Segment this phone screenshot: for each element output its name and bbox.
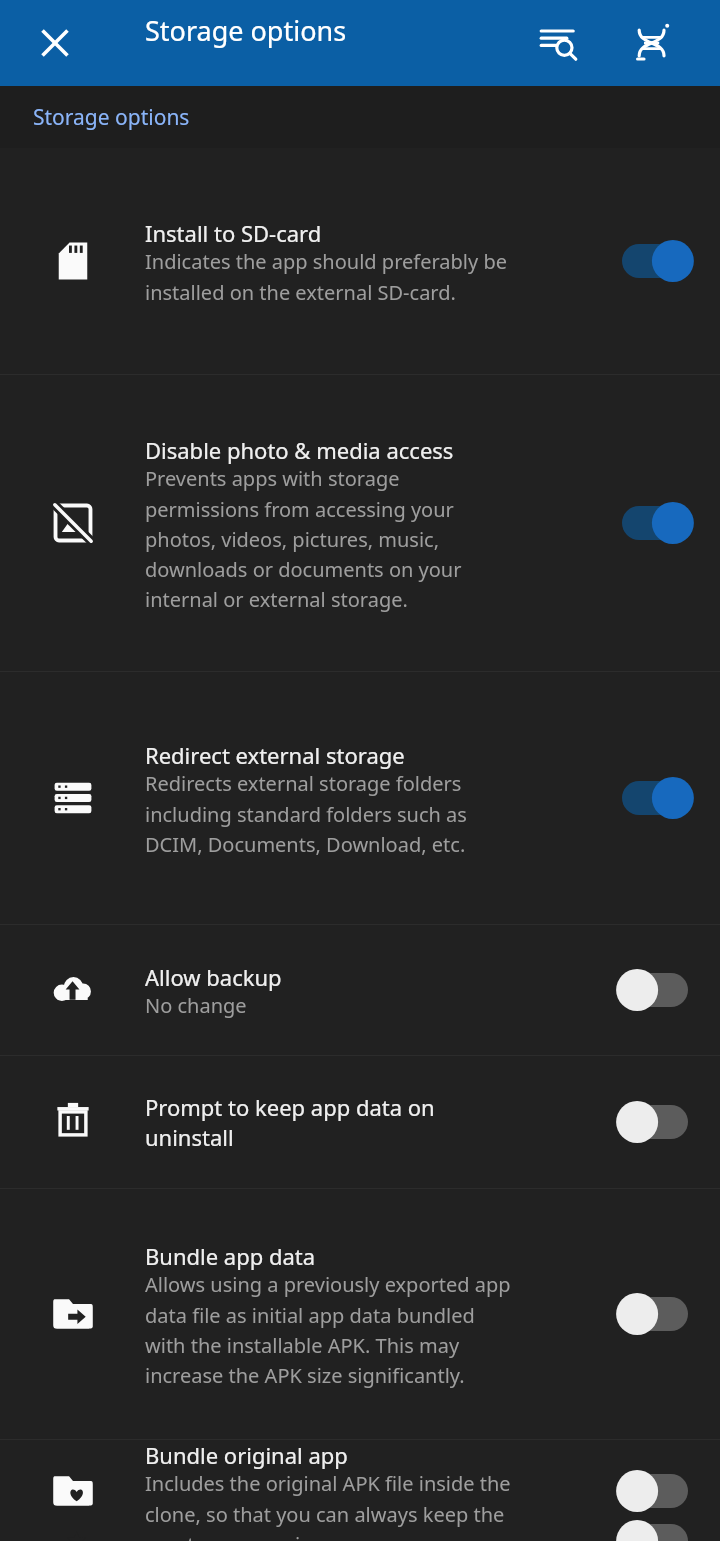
button[interactable] bbox=[609, 770, 701, 826]
staticText: Redirects external storage folders inclu… bbox=[145, 770, 467, 857]
button[interactable]: Mutate bbox=[622, 13, 682, 73]
staticText: Bundle original app bbox=[145, 1440, 348, 1470]
staticText: Bundle app data bbox=[145, 1241, 316, 1271]
button[interactable]: Allow backup bbox=[0, 925, 720, 1055]
button[interactable]: Install to SD-card bbox=[0, 148, 720, 374]
button[interactable] bbox=[609, 962, 701, 1018]
staticText: Prompt to keep app data on uninstall bbox=[145, 1092, 435, 1152]
button[interactable]: Filter and search bbox=[528, 13, 588, 73]
staticText: Includes the original APK file inside th… bbox=[145, 1470, 511, 1541]
button[interactable]: Close bbox=[26, 14, 84, 72]
staticText: No change bbox=[145, 992, 247, 1019]
button[interactable] bbox=[609, 1286, 701, 1342]
button[interactable] bbox=[609, 1094, 701, 1150]
button[interactable] bbox=[609, 233, 701, 289]
button[interactable] bbox=[609, 1463, 701, 1519]
button[interactable]: Disable photo & media access bbox=[0, 375, 720, 671]
staticText: Storage options bbox=[33, 103, 190, 132]
staticText: Indicates the app should preferably be i… bbox=[145, 248, 507, 305]
staticText: Disable photo & media access bbox=[145, 435, 454, 465]
button[interactable]: Prompt to keep app data on uninstall bbox=[0, 1056, 720, 1188]
staticText: Install to SD-card bbox=[145, 218, 322, 248]
staticText: Allows using a previously exported app d… bbox=[145, 1271, 511, 1388]
button[interactable]: Bundle original app bbox=[0, 1440, 720, 1541]
staticText: Redirect external storage bbox=[145, 740, 405, 770]
staticText: Storage options bbox=[145, 12, 347, 49]
staticText: Prevents apps with storage permissions f… bbox=[145, 465, 462, 612]
button[interactable]: Redirect external storage bbox=[0, 672, 720, 924]
staticText: Allow backup bbox=[145, 962, 282, 992]
button[interactable] bbox=[609, 495, 701, 551]
button[interactable]: Bundle app data bbox=[0, 1189, 720, 1439]
